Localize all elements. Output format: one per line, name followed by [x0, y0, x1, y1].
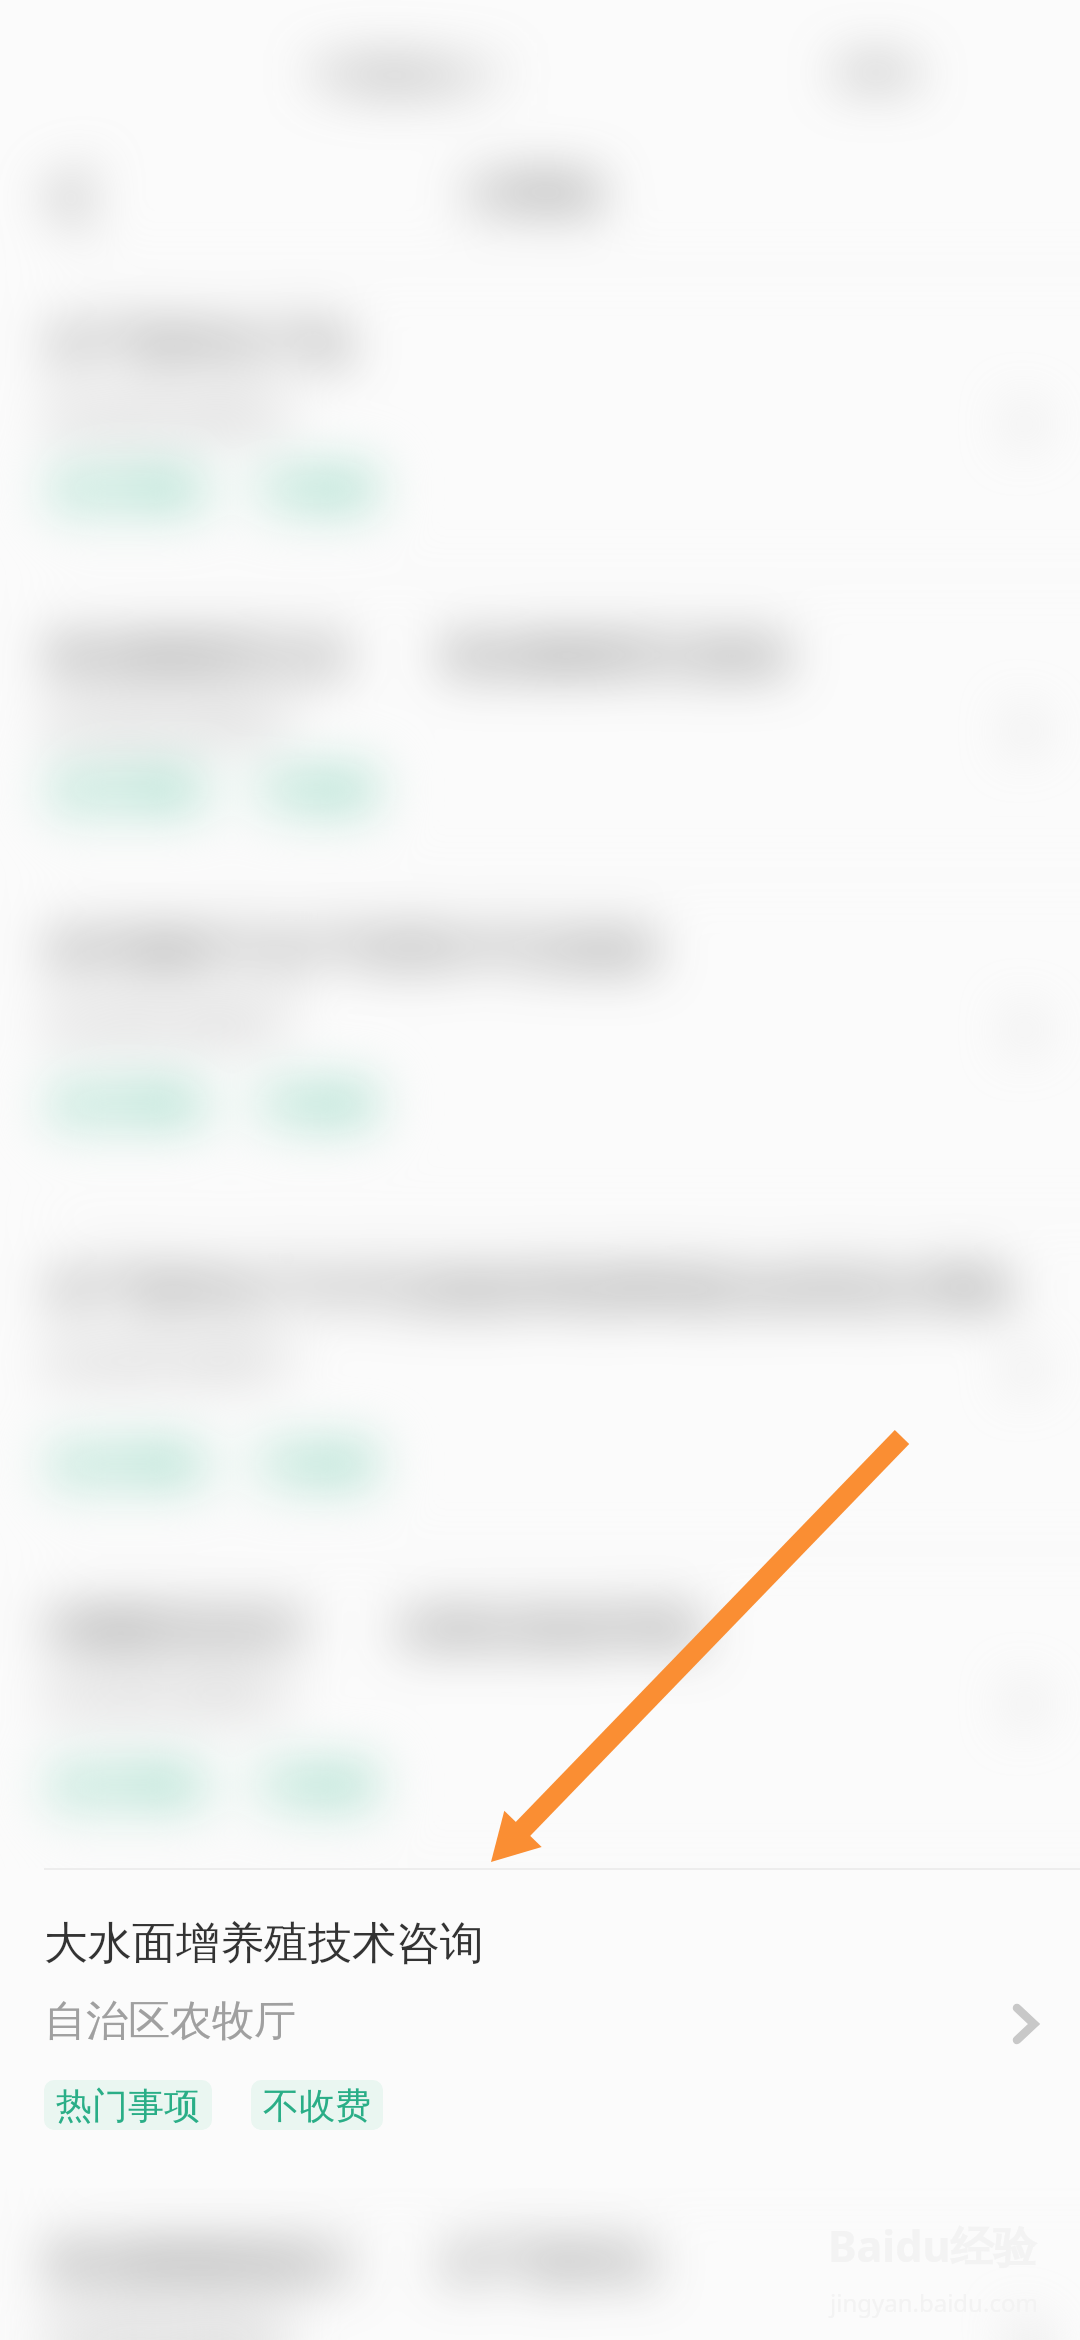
staticText: 热门事项	[56, 1442, 200, 1487]
staticText: 不收费	[263, 1442, 371, 1487]
staticText: 自治区农牧厅	[44, 1995, 296, 2048]
button[interactable]: 不收费	[251, 1760, 383, 1810]
staticText: 热门事项	[56, 768, 200, 813]
staticText: 不收费	[263, 2072, 371, 2117]
staticText: 热门事项	[56, 467, 200, 512]
button[interactable]: 热门事项	[44, 765, 212, 815]
button[interactable]: 渔业船舶检验记 水产苗种生	[0, 2182, 1080, 2340]
button[interactable]: 不收费	[251, 464, 383, 514]
staticText: 自治区农牧厅	[44, 1336, 296, 1389]
staticText: 中国移动 1	[312, 46, 506, 101]
button[interactable]: 热门事项	[44, 464, 212, 514]
staticText: 不收费	[263, 2083, 371, 2128]
button[interactable]: 渔业船舶登记证 渔业船舶登记核发	[0, 575, 1080, 874]
button[interactable]: 热门事项	[44, 1079, 212, 1129]
other: Open detail	[1013, 2005, 1038, 2045]
staticText: 办事南	[465, 165, 603, 223]
staticText: 农作物种子生产经营许可证核发	[44, 922, 660, 977]
button[interactable]: 水产苗种生产许可证核发审批事项告知承诺办理制	[0, 1214, 1080, 1548]
staticText: 自治区农牧厅	[44, 1991, 296, 2044]
staticText: 渔业船舶检验记 水产苗种生	[44, 2230, 660, 2290]
staticText: 热门事项	[56, 1082, 200, 1127]
staticText: 热门事项	[56, 2083, 200, 2128]
button[interactable]: 动物防疫条件 合格证核发审批	[0, 1548, 1080, 1869]
button[interactable]: 不收费	[251, 2069, 383, 2119]
staticText: 大水面增养殖技术咨询	[44, 1916, 484, 1971]
staticText: 水产苗种生产许可证核发审批事项告知承诺办理制	[44, 1262, 1012, 1317]
other: Open detail	[1013, 2004, 1038, 2044]
staticText: Baidu经验	[828, 2216, 1037, 2275]
staticText: 热门事项	[56, 2072, 200, 2117]
button[interactable]: 大水面增养殖技术咨询	[0, 1868, 1080, 2188]
button[interactable]: 不收费	[251, 2080, 383, 2130]
staticText: 不收费	[263, 467, 371, 512]
staticText: 自治区农牧厅	[44, 2304, 296, 2340]
button[interactable]: 不收费	[251, 765, 383, 815]
staticText: 不收费	[263, 768, 371, 813]
staticText: 大水面增养殖技术咨询	[44, 1917, 484, 1972]
staticText: 水产苗种生产批	[44, 316, 352, 371]
button[interactable]: 热门事项	[44, 1439, 212, 1489]
button[interactable]: 热门事项	[44, 2080, 212, 2130]
button[interactable]: 热门事项	[44, 1760, 212, 1810]
staticText: 自治区农牧厅	[44, 697, 296, 750]
button[interactable]: 农作物种子生产经营许可证核发	[0, 874, 1080, 1214]
button[interactable]: 水产苗种生产批	[0, 268, 1080, 575]
staticText: 自治区农牧厅	[44, 1670, 296, 1723]
button[interactable]: 不收费	[251, 1439, 383, 1489]
staticText: 不收费	[263, 1082, 371, 1127]
staticText: 动物防疫条件 合格证核发审批	[44, 1596, 704, 1656]
button[interactable]: 大水面增养殖技术咨询	[0, 1869, 1080, 2182]
button[interactable]: 热门事项	[44, 2069, 212, 2119]
staticText: 84%	[838, 44, 917, 98]
button[interactable]: 不收费	[251, 1079, 383, 1129]
staticText: 不收费	[263, 1763, 371, 1808]
staticText: 热门事项	[56, 1763, 200, 1808]
staticText: 渔业船舶登记证 渔业船舶登记核发	[44, 623, 792, 683]
